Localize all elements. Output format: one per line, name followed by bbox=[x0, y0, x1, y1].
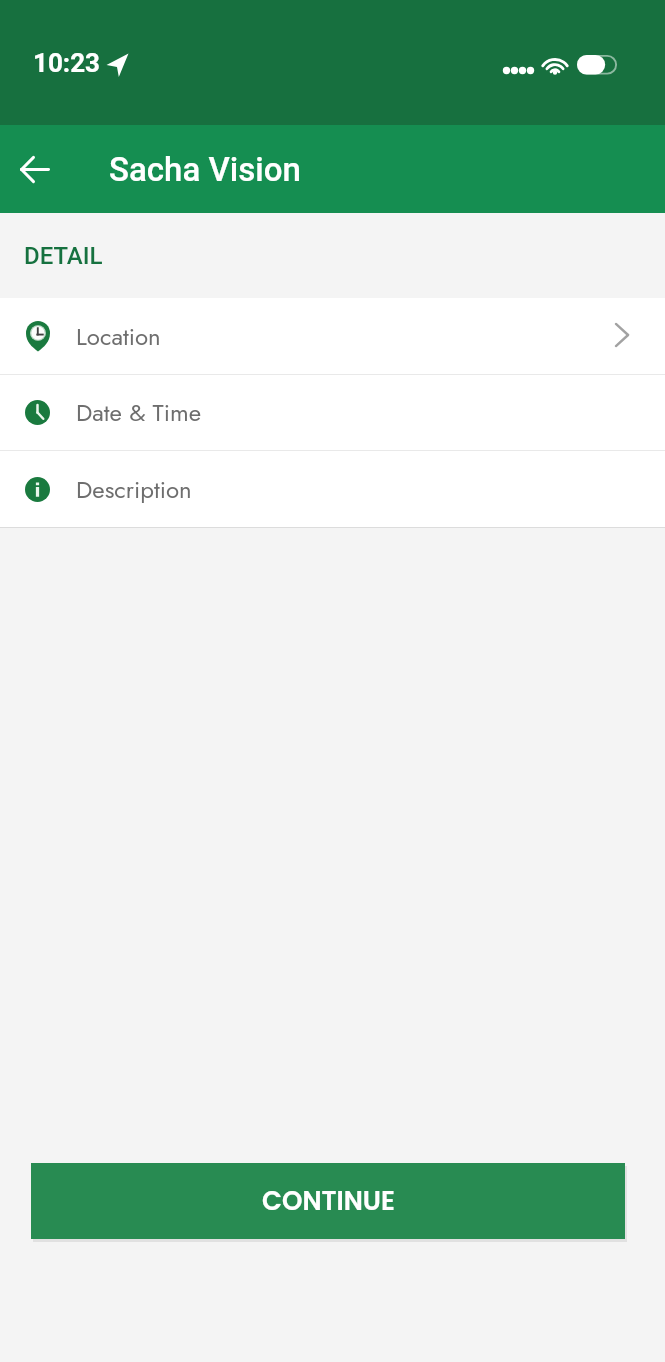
button[interactable]: Location bbox=[0, 298, 665, 374]
staticText: Description bbox=[76, 472, 192, 507]
staticText: Location bbox=[76, 319, 161, 354]
staticText: DETAIL bbox=[24, 242, 103, 270]
button[interactable]: Description bbox=[0, 451, 665, 527]
button[interactable]: Date & Time bbox=[0, 375, 665, 450]
button[interactable]: CONTINUE bbox=[31, 1163, 625, 1239]
button[interactable]: Back bbox=[7, 141, 63, 197]
staticText: CONTINUE bbox=[262, 1183, 395, 1219]
staticText: 10:23 bbox=[33, 48, 101, 78]
staticText: Date & Time bbox=[76, 395, 202, 430]
staticText: Sacha Vision bbox=[109, 150, 301, 189]
